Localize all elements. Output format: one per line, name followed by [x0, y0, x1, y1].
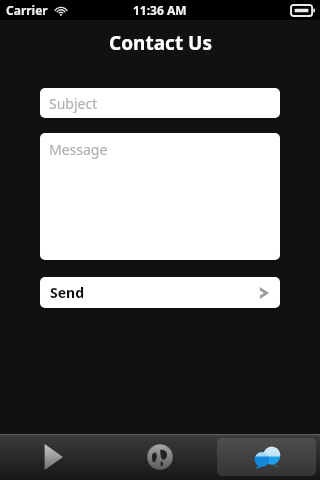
staticText: Subject: [49, 94, 98, 113]
button[interactable]: Subject: [40, 88, 280, 118]
button[interactable]: Send: [40, 277, 280, 308]
button[interactable]: Browse: [110, 438, 209, 476]
button[interactable]: Play: [4, 438, 102, 476]
button[interactable]: Message: [40, 133, 280, 260]
staticText: Message: [49, 140, 108, 159]
staticText: 11:36 AM: [133, 2, 187, 18]
button[interactable]: Messages: [217, 438, 316, 476]
staticText: Send: [50, 283, 85, 302]
staticText: Carrier: [6, 2, 48, 18]
staticText: Contact Us: [109, 30, 212, 56]
